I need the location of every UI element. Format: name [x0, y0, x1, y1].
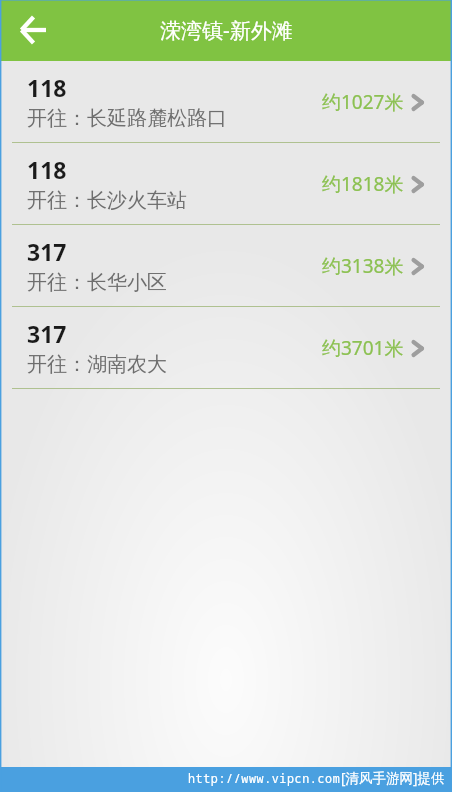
staticText: 317	[27, 318, 67, 349]
staticText: 118	[27, 154, 67, 185]
staticText: 开往：长沙火车站	[27, 188, 187, 213]
staticText: 开往：湖南农大	[27, 352, 167, 377]
staticText: [清风手游网]提供	[341, 769, 445, 787]
staticText: 约1027米	[322, 89, 404, 115]
button[interactable]: 118	[0, 143, 452, 225]
staticText: 317	[27, 236, 67, 267]
staticText: 溁湾镇-新外滩	[160, 16, 293, 45]
staticText: 约1818米	[322, 171, 404, 197]
button[interactable]: 317	[0, 225, 452, 307]
staticText: 约3138米	[322, 253, 404, 279]
button[interactable]: Back	[11, 8, 55, 52]
button[interactable]: 317	[0, 307, 452, 389]
staticText: http://www.vipcn.com	[188, 770, 341, 786]
staticText: 约3701米	[322, 335, 404, 361]
staticText: 开往：长延路麓松路口	[27, 106, 227, 131]
staticText: 开往：长华小区	[27, 270, 167, 295]
staticText: 118	[27, 72, 67, 103]
button[interactable]: 118	[0, 61, 452, 143]
